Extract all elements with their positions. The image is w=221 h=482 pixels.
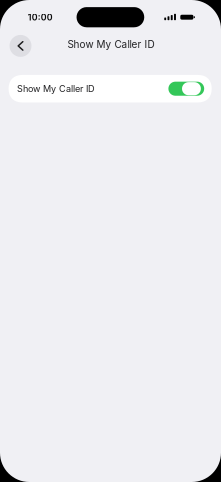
staticText: 10:00 xyxy=(28,12,53,23)
button[interactable]: Back xyxy=(9,35,32,57)
staticText: Show My Caller ID xyxy=(67,38,154,50)
staticText: Show My Caller ID xyxy=(17,83,95,94)
button[interactable]: Show My Caller ID xyxy=(9,75,212,102)
